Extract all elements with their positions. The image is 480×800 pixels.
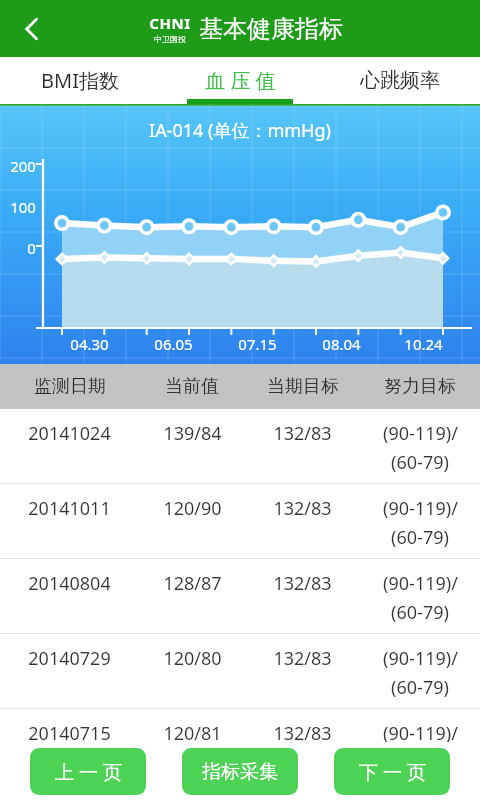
staticText: 20140804 xyxy=(28,571,111,596)
staticText: 指标采集 xyxy=(202,760,278,784)
staticText: 0 xyxy=(27,238,36,258)
staticText: 当前值 xyxy=(165,375,219,398)
staticText: BMI指数 xyxy=(41,67,119,94)
staticText: CHNI xyxy=(149,13,191,33)
staticText: 心跳频率 xyxy=(360,68,440,93)
staticText: 07.15 xyxy=(238,334,277,354)
button[interactable]: 20141011 xyxy=(0,484,480,558)
button[interactable]: 指标采集 xyxy=(182,748,298,795)
staticText: 监测日期 xyxy=(34,375,106,398)
staticText: (90-119)/ xyxy=(383,496,458,521)
staticText: 132/83 xyxy=(273,571,332,596)
staticText: 132/83 xyxy=(273,721,332,746)
button[interactable]: 20140715 xyxy=(0,709,480,783)
staticText: 08.04 xyxy=(322,334,361,354)
staticText: (60-79) xyxy=(391,750,449,775)
staticText: 120/90 xyxy=(163,496,222,521)
staticText: 20140729 xyxy=(28,646,111,671)
staticText: (60-79) xyxy=(391,600,449,625)
button[interactable]: 20140804 xyxy=(0,559,480,633)
staticText: IA-014 (单位：mmHg) xyxy=(149,118,331,143)
staticText: (60-79) xyxy=(391,675,449,700)
staticText: 20141024 xyxy=(28,421,111,446)
button[interactable]: 血 压 值 xyxy=(160,57,320,104)
staticText: (60-79) xyxy=(391,450,449,475)
button[interactable]: 下 一 页 xyxy=(334,748,450,795)
staticText: 132/83 xyxy=(273,421,332,446)
staticText: 200 xyxy=(10,156,36,176)
button[interactable]: 心跳频率 xyxy=(320,57,480,104)
staticText: (60-79) xyxy=(391,525,449,550)
staticText: 当期目标 xyxy=(267,375,339,398)
staticText: 20140715 xyxy=(28,721,111,746)
button[interactable]: Back xyxy=(0,0,64,57)
button[interactable]: 上 一 页 xyxy=(30,748,146,795)
staticText: 04.30 xyxy=(70,334,109,354)
staticText: 20141011 xyxy=(28,496,111,521)
staticText: 血 压 值 xyxy=(205,67,276,94)
staticText: (90-119)/ xyxy=(383,646,458,671)
staticText: 06.05 xyxy=(154,334,193,354)
staticText: 120/81 xyxy=(163,721,222,746)
staticText: 132/83 xyxy=(273,646,332,671)
staticText: 中卫国投 xyxy=(154,34,186,44)
button[interactable]: 20141024 xyxy=(0,409,480,483)
staticText: 128/87 xyxy=(163,571,222,596)
staticText: (90-119)/ xyxy=(383,721,458,746)
staticText: 10.24 xyxy=(404,334,443,354)
staticText: (90-119)/ xyxy=(383,421,458,446)
button[interactable]: BMI指数 xyxy=(0,57,160,104)
staticText: 下 一 页 xyxy=(359,759,426,785)
staticText: 120/80 xyxy=(163,646,222,671)
staticText: 100 xyxy=(10,197,36,217)
staticText: 基本健康指标 xyxy=(199,14,343,44)
staticText: 139/84 xyxy=(163,421,222,446)
button[interactable]: 20140729 xyxy=(0,634,480,708)
staticText: 132/83 xyxy=(273,496,332,521)
staticText: 上 一 页 xyxy=(55,759,122,785)
staticText: 努力目标 xyxy=(384,375,456,398)
staticText: (90-119)/ xyxy=(383,571,458,596)
